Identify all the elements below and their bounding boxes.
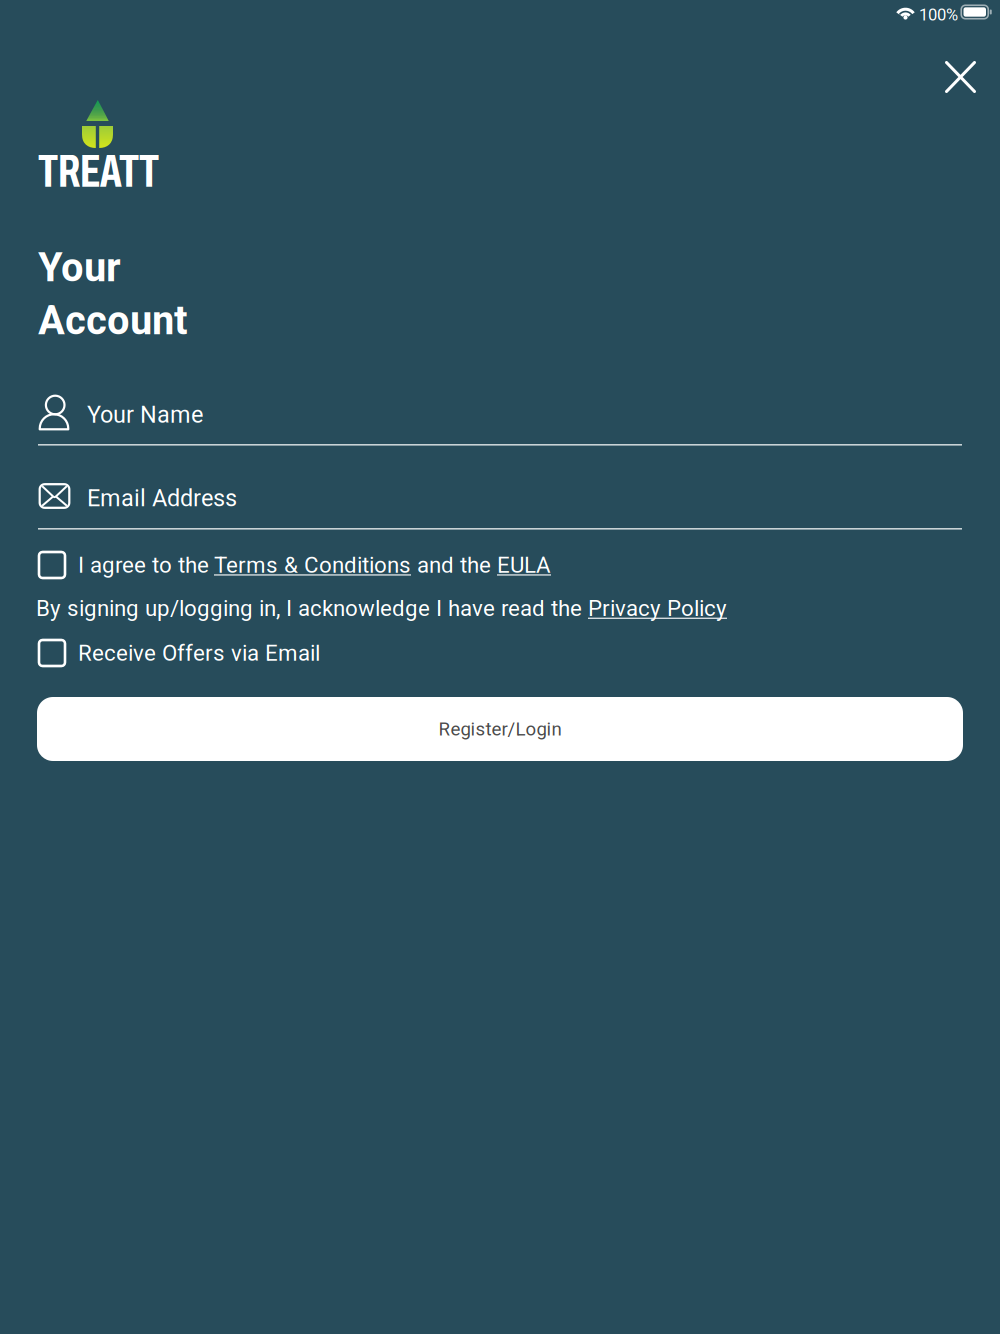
staticText: Your Name — [87, 400, 203, 428]
staticText: Account — [38, 296, 188, 344]
button[interactable]: Email Address — [0, 478, 1000, 530]
staticText: Receive Offers via Email — [78, 640, 320, 666]
staticText: Email Address — [87, 484, 237, 512]
button[interactable]: Your Name — [0, 389, 1000, 446]
staticText: 100% — [919, 5, 958, 25]
button[interactable]: Receive Offers via Email — [0, 635, 1000, 671]
button[interactable]: Close — [927, 49, 1000, 105]
button[interactable]: Register/Login — [37, 697, 963, 761]
staticText: I agree to the Terms & Conditions and th… — [78, 552, 551, 578]
staticText: By signing up/logging in, I acknowledge … — [36, 595, 727, 622]
staticText: Your — [38, 243, 121, 291]
staticText: TREATT — [38, 147, 159, 196]
staticText: Register/Login — [438, 718, 561, 740]
button[interactable]: I agree to the Terms & Conditions and th… — [0, 547, 1000, 583]
